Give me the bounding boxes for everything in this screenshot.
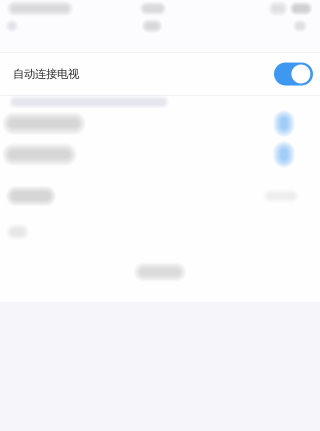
button[interactable] [0,139,320,170]
button[interactable] [0,108,320,139]
staticText: 自动连接电视 [13,67,79,81]
button[interactable]: 自动连接电视 [0,53,320,95]
button[interactable] [0,242,320,302]
button[interactable] [0,170,320,222]
